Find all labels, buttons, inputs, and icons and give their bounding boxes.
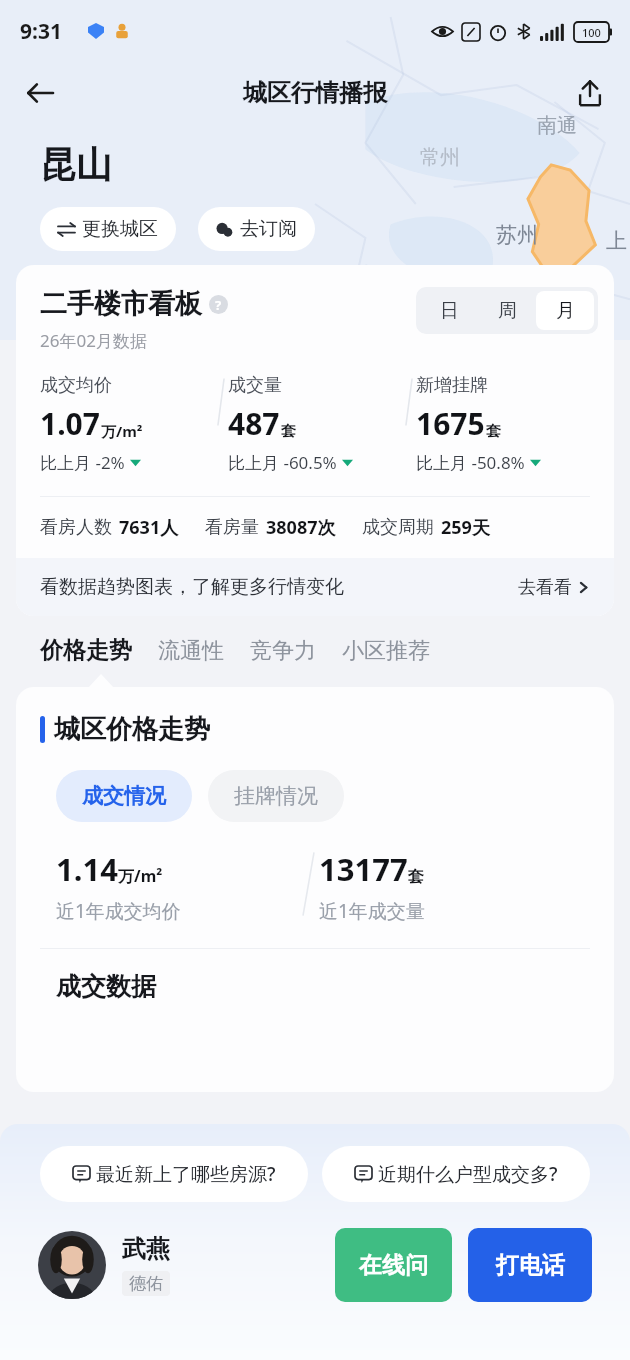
button[interactable]: 最近新上了哪些房源? (40, 1146, 308, 1202)
button[interactable]: 流通性 (158, 633, 224, 669)
button[interactable]: Back (14, 67, 66, 119)
staticText: 近1年成交均价 (56, 898, 181, 924)
staticText: 看数据趋势图表，了解更多行情变化 (40, 575, 344, 599)
staticText: 湖州 (437, 278, 477, 303)
staticText: 宜兴 (522, 298, 556, 319)
staticText: 去订阅 (240, 217, 297, 241)
staticText: 德佑 (129, 1273, 163, 1294)
button[interactable]: 近期什么户型成交多? (322, 1146, 590, 1202)
staticText: 月 (556, 299, 575, 323)
button[interactable]: 成交情况 (56, 770, 192, 822)
staticText: 1.07 (40, 403, 100, 444)
button[interactable]: 日 (420, 291, 478, 330)
staticText: 38087次 (266, 515, 336, 540)
staticText: 9:31 (20, 17, 62, 46)
staticText: 成交量 (228, 374, 282, 397)
staticText: 7631人 (119, 515, 179, 540)
staticText: 打电话 (496, 1251, 565, 1280)
staticText: 近期什么户型成交多? (378, 1161, 558, 1187)
button[interactable]: 更换城区 (40, 207, 176, 251)
staticText: 万/m² (101, 421, 143, 441)
staticText: 最近新上了哪些房源? (96, 1161, 276, 1187)
staticText: 竞争力 (250, 637, 316, 665)
staticText: 周 (498, 299, 517, 323)
staticText: 套 (486, 422, 501, 441)
button[interactable]: Help (209, 295, 228, 314)
staticText: 常州 (420, 145, 460, 170)
staticText: 日 (440, 299, 459, 323)
staticText: 在线问 (359, 1251, 428, 1280)
staticText: 城区行情播报 (243, 78, 387, 108)
staticText: 万/m² (118, 865, 163, 887)
staticText: 新增挂牌 (416, 374, 488, 397)
staticText: 苏州 (496, 222, 538, 248)
staticText: 上 (606, 228, 627, 254)
staticText: 昆山 (40, 142, 112, 187)
staticText: 套 (281, 422, 296, 441)
staticText: 100 (582, 25, 601, 40)
staticText: 259天 (441, 515, 490, 540)
staticText: 挂牌情况 (234, 783, 318, 809)
staticText: 套 (408, 867, 424, 887)
staticText: 南通 (537, 113, 577, 138)
staticText: 1.14 (56, 848, 118, 890)
button[interactable]: 打电话 (468, 1228, 592, 1302)
staticText: 价格走势 (40, 636, 132, 665)
staticText: 看房人数 (40, 516, 112, 539)
button[interactable]: 去订阅 (198, 207, 315, 251)
staticText: 成交数据 (56, 971, 156, 1002)
button[interactable]: Share (564, 67, 616, 119)
button[interactable]: 竞争力 (250, 633, 316, 669)
button[interactable]: 在线问 (335, 1228, 452, 1302)
button[interactable]: 挂牌情况 (208, 770, 344, 822)
button[interactable]: 小区推荐 (342, 633, 430, 669)
staticText: 去看看 (518, 576, 572, 599)
staticText: 成交周期 (362, 516, 434, 539)
button[interactable]: 价格走势 (40, 632, 132, 669)
staticText: ? (215, 296, 222, 314)
staticText: 城区价格走势 (54, 713, 210, 746)
staticText: 看房量 (205, 516, 259, 539)
staticText: 13177 (319, 848, 408, 890)
staticText: 比上月 -60.5% (228, 451, 337, 474)
button[interactable]: 看数据趋势图表，了解更多行情变化 (16, 558, 614, 616)
staticText: 比上月 -2% (40, 451, 125, 474)
staticText: 比上月 -50.8% (416, 451, 525, 474)
button[interactable]: Agent avatar (38, 1231, 106, 1299)
staticText: 近1年成交量 (319, 898, 425, 924)
staticText: 26年02月数据 (40, 329, 147, 352)
staticText: 成交均价 (40, 374, 112, 397)
staticText: 487 (228, 403, 280, 444)
button[interactable]: 月 (536, 291, 594, 330)
staticText: 流通性 (158, 637, 224, 665)
staticText: 1675 (416, 403, 485, 444)
staticText: 二手楼市看板 (40, 287, 202, 321)
staticText: 武燕 (122, 1234, 170, 1264)
staticText: 成交情况 (82, 783, 166, 809)
staticText: 更换城区 (82, 217, 158, 241)
button[interactable]: 周 (478, 291, 536, 330)
staticText: 小区推荐 (342, 637, 430, 665)
